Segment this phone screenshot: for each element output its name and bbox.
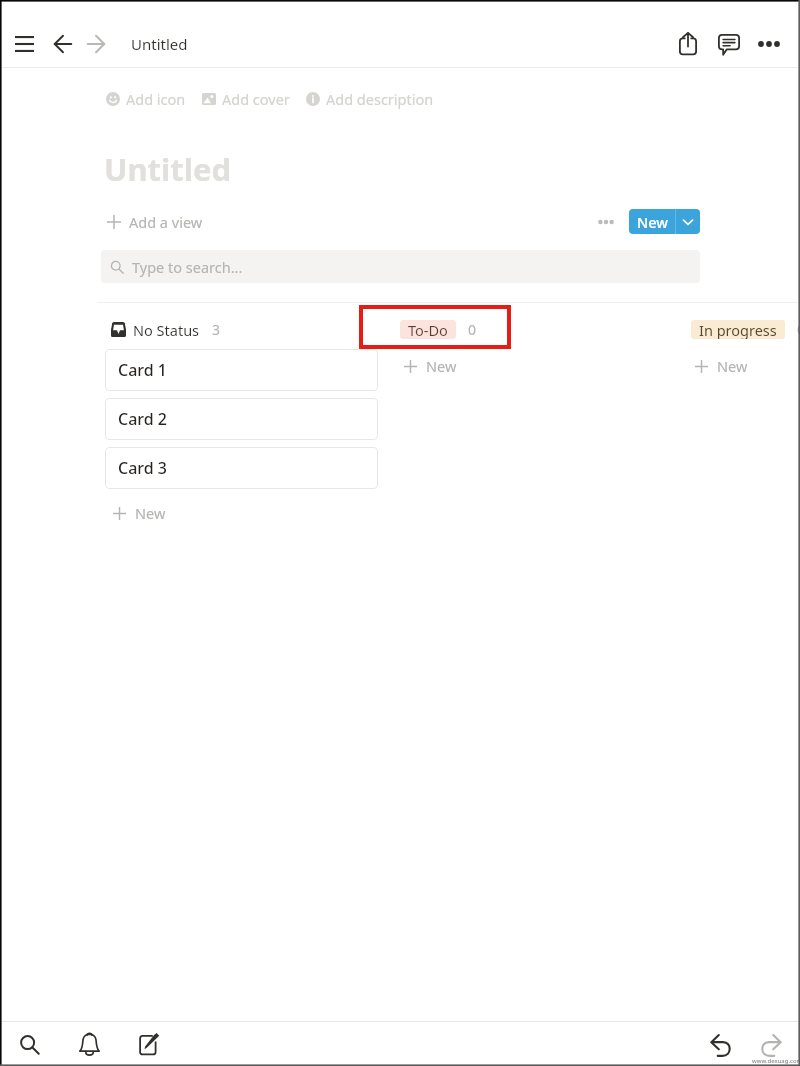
button[interactable]: Card 3: [105, 447, 378, 489]
button[interactable]: Add icon: [106, 89, 186, 109]
button[interactable]: Notifications: [67, 1022, 111, 1066]
button[interactable]: Back: [41, 22, 85, 66]
button[interactable]: New page: [127, 1022, 171, 1066]
button[interactable]: Menu: [2, 22, 46, 66]
staticText: 0: [797, 320, 800, 339]
staticText: No Status: [133, 320, 200, 340]
staticText: www.dexuag.com: [752, 1057, 800, 1065]
button[interactable]: Type to search...: [101, 250, 700, 283]
staticText: 0: [468, 320, 477, 339]
button[interactable]: Add a view: [107, 210, 203, 234]
staticText: To-Do: [408, 320, 448, 339]
button[interactable]: New: [695, 355, 748, 377]
button[interactable]: View options: [592, 208, 620, 236]
staticText: New: [135, 503, 166, 523]
button[interactable]: In progress: [691, 318, 800, 340]
button[interactable]: Add cover: [202, 89, 290, 109]
button[interactable]: Card 2: [105, 398, 378, 440]
staticText: New: [637, 212, 668, 232]
staticText: Add description: [326, 89, 434, 109]
button[interactable]: New: [629, 209, 675, 234]
button[interactable]: Forward: [74, 22, 118, 66]
button[interactable]: Undo: [699, 1023, 743, 1066]
staticText: Card 2: [118, 408, 167, 430]
staticText: 3: [212, 320, 221, 339]
button[interactable]: New: [404, 355, 457, 377]
button[interactable]: To-Do: [400, 318, 477, 340]
staticText: Card 3: [118, 457, 167, 479]
staticText: Add a view: [129, 212, 203, 232]
button[interactable]: Card 1: [105, 349, 378, 391]
staticText: Add cover: [222, 89, 290, 109]
staticText: Type to search...: [132, 257, 243, 277]
staticText: Add icon: [126, 89, 186, 109]
button[interactable]: Redo: [749, 1023, 793, 1066]
staticText: New: [426, 356, 457, 376]
staticText: Untitled: [104, 148, 232, 190]
button[interactable]: Add description: [306, 89, 434, 109]
button[interactable]: New: [113, 502, 166, 524]
button[interactable]: Share: [666, 21, 710, 65]
button[interactable]: Comments: [707, 22, 751, 66]
staticText: In progress: [699, 320, 777, 339]
button[interactable]: New options: [676, 209, 700, 234]
staticText: New: [717, 356, 748, 376]
staticText: Card 1: [118, 359, 167, 381]
button[interactable]: No Status: [111, 319, 221, 340]
button[interactable]: More options: [747, 22, 791, 66]
button[interactable]: Search: [7, 1022, 51, 1066]
staticText: Untitled: [131, 34, 188, 54]
